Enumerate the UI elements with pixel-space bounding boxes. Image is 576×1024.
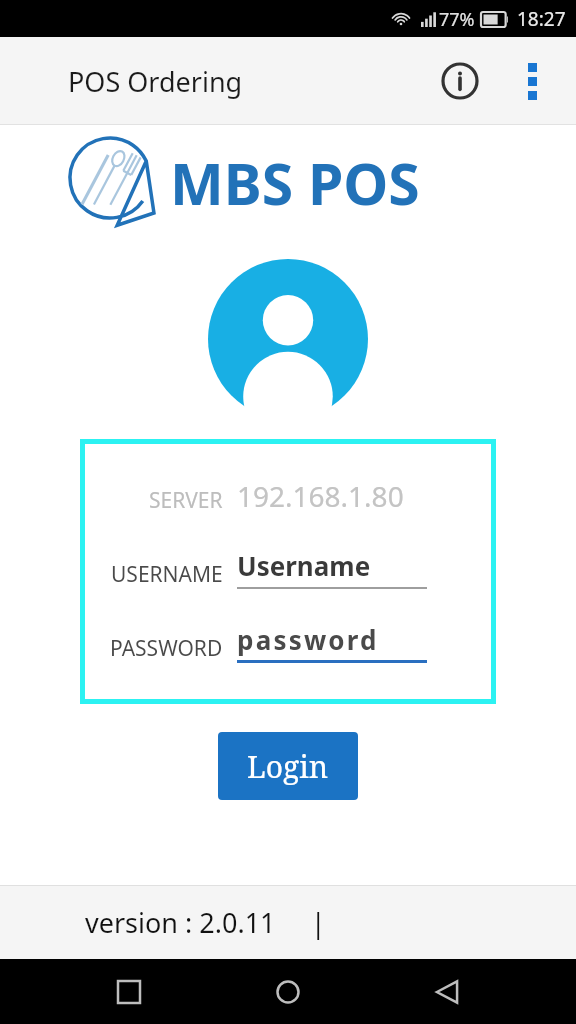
staticText: MBS POS [170, 144, 420, 222]
button[interactable]: Username [237, 548, 427, 589]
staticText: SERVER [149, 486, 223, 515]
staticText: 192.168.1.80 [237, 477, 404, 515]
staticText: USERNAME [111, 560, 223, 589]
button[interactable]: Back [417, 962, 477, 1022]
staticText: POS Ordering [68, 63, 243, 100]
staticText: version : 2.0.11 | [85, 904, 326, 941]
staticText: 18:27 [517, 6, 566, 32]
staticText: 77% [439, 7, 475, 32]
staticText: PASSWORD [110, 634, 223, 663]
button[interactable]: password [237, 622, 427, 663]
button[interactable]: Recent apps [99, 962, 159, 1022]
button[interactable]: Login [218, 732, 358, 800]
staticText: password [237, 622, 379, 657]
button[interactable]: Info [434, 55, 486, 107]
staticText: Login [247, 746, 329, 787]
button[interactable]: More options [508, 57, 556, 105]
button[interactable]: Home [258, 962, 318, 1022]
staticText: Username [237, 548, 371, 583]
